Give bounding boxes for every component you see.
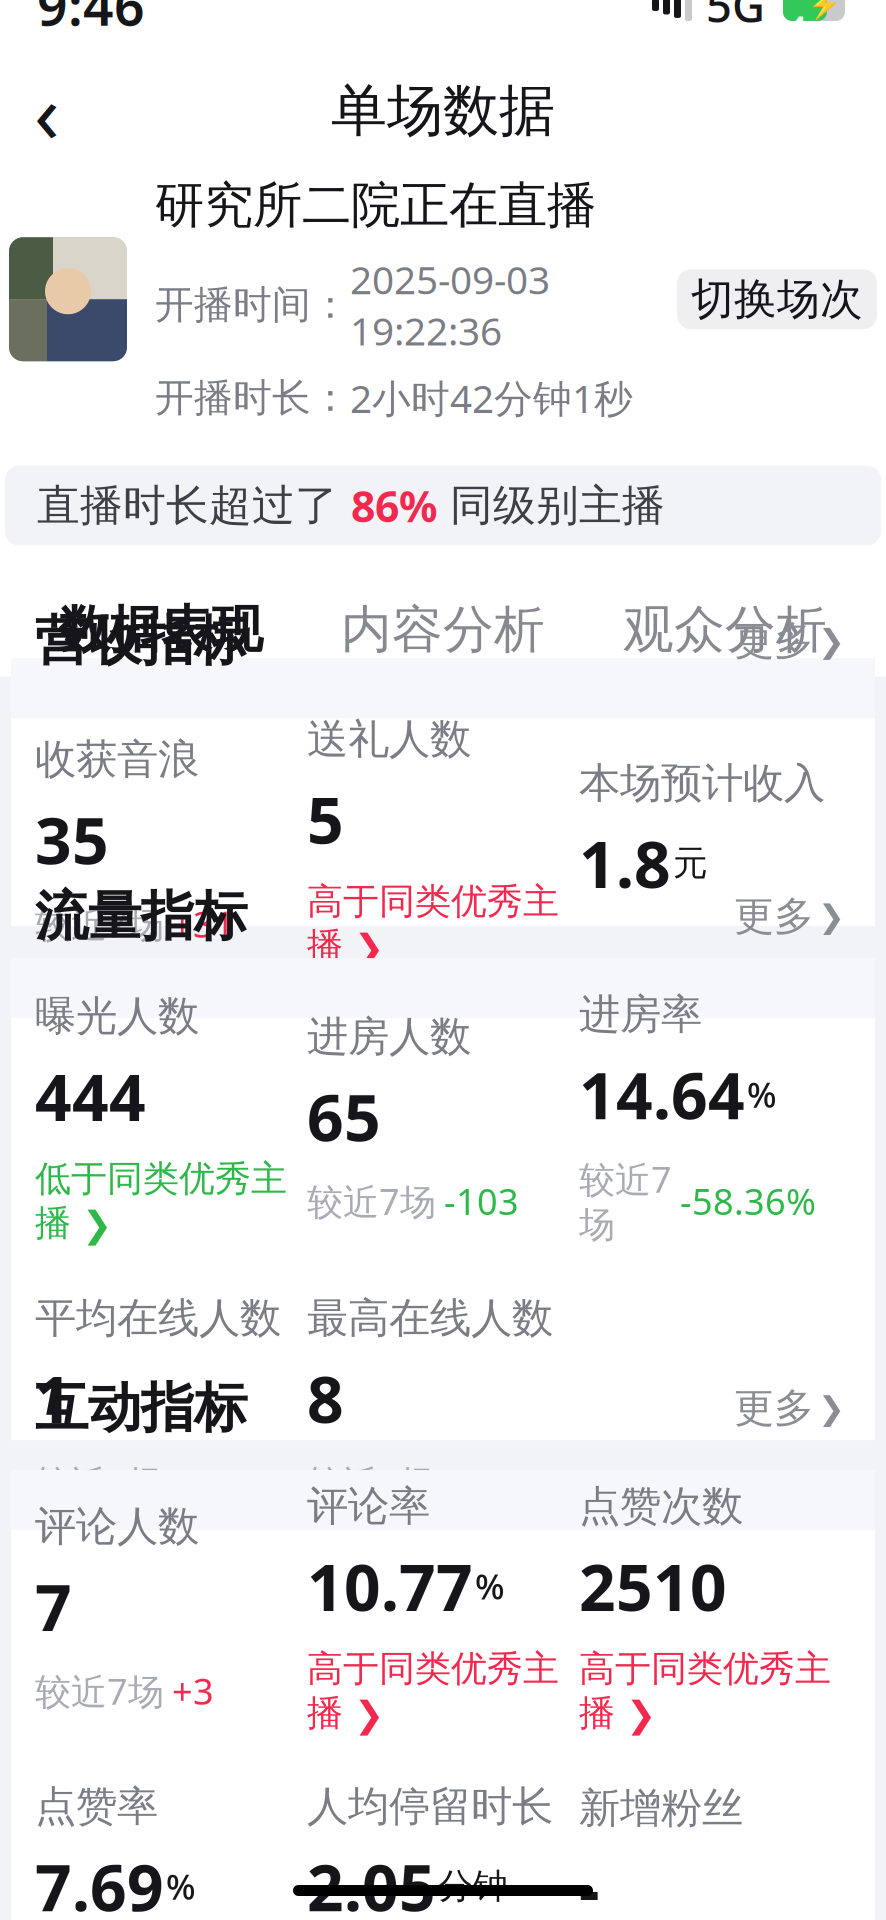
staticText: 分钟 <box>438 1865 508 1908</box>
staticText: 元 <box>673 842 708 884</box>
staticText: 14.64 <box>579 1052 745 1137</box>
staticText: 同级别主播 <box>437 479 665 532</box>
staticText: 开播时间： <box>155 281 350 329</box>
staticText: 2.05 <box>307 1844 436 1920</box>
staticText: 86% <box>351 477 437 534</box>
staticText: ❯ <box>818 1390 845 1426</box>
staticText: 点赞率 <box>35 1781 158 1832</box>
button[interactable]: 高于同类优秀主播 ❯ <box>307 1647 579 1735</box>
staticText: ‹ <box>34 56 60 166</box>
staticText: 2小时42分钟1秒 <box>350 372 633 423</box>
staticText: 10.77 <box>307 1544 473 1629</box>
staticText: 1.8 <box>579 821 671 906</box>
staticText: 本场预计收入 <box>579 758 825 809</box>
staticText: 高于同类优秀主播 ❯ <box>307 879 559 968</box>
staticText: 观众分析 <box>623 598 827 661</box>
staticText: 9:46 <box>37 0 145 40</box>
staticText: 更多 <box>734 1383 814 1433</box>
staticText: 2510 <box>579 1544 727 1629</box>
staticText: 较近7场 <box>35 1459 164 1506</box>
button[interactable]: 内容分析 <box>302 590 584 670</box>
staticText: 流量指标 <box>35 884 247 949</box>
staticText: 更多 <box>734 616 814 665</box>
staticText: 评论率 <box>307 1481 430 1532</box>
staticText: 进房率 <box>579 989 702 1040</box>
staticText: 直播时长超过了 <box>37 479 351 532</box>
staticText: 新增粉丝 <box>579 1783 743 1834</box>
staticText: 最高在线人数 <box>307 1293 553 1344</box>
staticText: - <box>579 1846 599 1920</box>
staticText: 内容分析 <box>341 598 545 661</box>
staticText: 较近7场 <box>307 1459 436 1506</box>
button[interactable]: 数据表现 <box>20 590 302 670</box>
staticText: 8 <box>307 1356 344 1441</box>
staticText: 444 <box>35 1054 146 1139</box>
staticText: 2025-09-03 19:22:36 <box>350 253 550 356</box>
staticText: 高于同类优秀主播 ❯ <box>307 1647 559 1735</box>
staticText: % <box>166 1863 196 1909</box>
staticText: 低于同类优秀主播 ❯ <box>35 1157 287 1245</box>
staticText: 送礼人数 <box>307 714 471 764</box>
button[interactable]: 更多 <box>728 610 851 671</box>
staticText: 5G <box>706 0 765 35</box>
staticText: 营收指标 <box>35 608 247 674</box>
staticText: +31 <box>172 900 235 948</box>
staticText: 平均在线人数 <box>35 1293 281 1344</box>
staticText: 数据表现 <box>59 598 263 661</box>
staticText: 较近7场 <box>579 1155 672 1247</box>
staticText: 评论人数 <box>35 1501 199 1552</box>
staticText: % <box>747 1071 777 1117</box>
staticText: -103 <box>444 1177 519 1225</box>
button[interactable]: 更多 <box>728 1377 851 1439</box>
staticText: -58.36% <box>680 1177 816 1225</box>
staticText: 65 <box>307 1074 381 1159</box>
staticText: 互动指标 <box>35 1375 247 1441</box>
staticText: 64 <box>787 0 807 51</box>
staticText: 较近7场 <box>35 1667 164 1715</box>
button[interactable]: 高于同类优秀主播 ❯ <box>579 1647 851 1735</box>
staticText: ⚡ <box>808 0 841 20</box>
staticText: 7.69 <box>35 1844 164 1920</box>
staticText: 高于同类优秀主播 ❯ <box>579 1647 831 1735</box>
staticText: 更多 <box>734 892 814 941</box>
staticText: 1 <box>35 1356 72 1441</box>
button[interactable]: Back <box>7 71 87 151</box>
staticText: 单场数据 <box>331 76 555 145</box>
staticText: % <box>475 1563 505 1609</box>
staticText: 切换场次 <box>691 273 863 325</box>
staticText: ❯ <box>818 623 845 659</box>
button[interactable]: 低于同类优秀主播 ❯ <box>35 1157 307 1245</box>
staticText: 点赞次数 <box>579 1481 743 1532</box>
staticText: 收获音浪 <box>35 734 199 785</box>
staticText: ❯ <box>818 898 845 934</box>
button[interactable]: 观众分析 <box>584 590 866 670</box>
staticText: +3 <box>172 1667 214 1715</box>
staticText: 5 <box>307 776 344 861</box>
staticText: 35 <box>35 797 109 882</box>
staticText: 进房人数 <box>307 1011 471 1062</box>
staticText: 人均停留时长 <box>307 1781 553 1832</box>
staticText: 研究所二院正在直播 <box>155 175 596 235</box>
staticText: 曝光人数 <box>35 991 199 1042</box>
button[interactable]: 高于同类优秀主播 ❯ <box>307 879 579 968</box>
staticText: 较近7场 <box>307 1177 436 1225</box>
staticText: 开播时长： <box>155 374 350 422</box>
staticText: 7 <box>35 1564 72 1649</box>
button[interactable]: 更多 <box>728 886 851 947</box>
staticText: 较近7场 <box>35 900 164 948</box>
button[interactable]: 切换场次 <box>677 269 877 329</box>
